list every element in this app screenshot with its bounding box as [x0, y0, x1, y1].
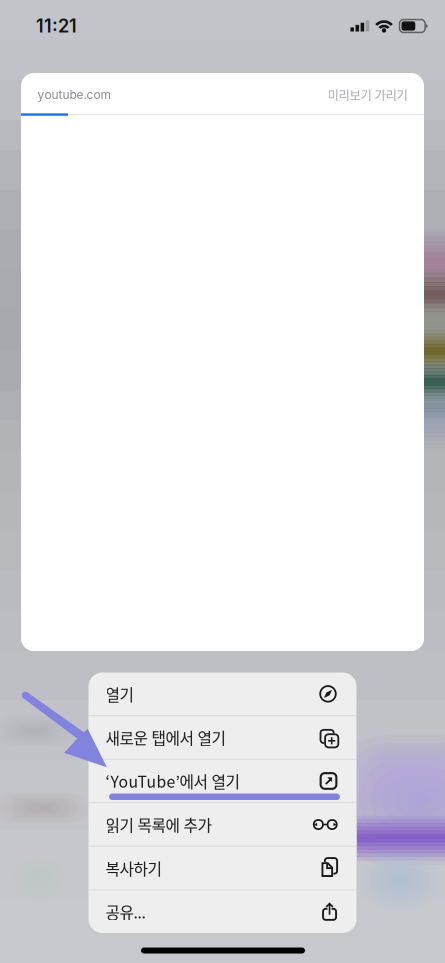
staticText: 열기 [105, 682, 133, 705]
button[interactable]: ‘YouTube’에서 열기 [88, 760, 356, 802]
button[interactable]: 공유... [88, 890, 356, 933]
staticText: ‘YouTube’에서 열기 [105, 770, 239, 792]
button[interactable]: 미리보기 가리기 [327, 86, 407, 104]
staticText: 읽기 목록에 추가 [105, 813, 211, 836]
staticText: youtube.com [37, 87, 111, 102]
staticText: 공유... [105, 900, 145, 923]
button[interactable]: 읽기 목록에 추가 [88, 803, 356, 846]
staticText: 복사하기 [105, 857, 161, 879]
staticText: 새로운 탭에서 열기 [105, 726, 225, 749]
button[interactable]: 열기 [88, 672, 356, 715]
staticText: 미리보기 가리기 [327, 86, 407, 104]
button[interactable]: 복사하기 [88, 847, 356, 889]
staticText: 11:21 [36, 15, 77, 37]
button[interactable]: 새로운 탭에서 열기 [88, 716, 356, 759]
